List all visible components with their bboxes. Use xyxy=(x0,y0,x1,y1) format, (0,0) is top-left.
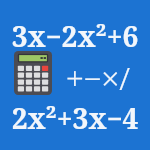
staticText: 3x−2x²+6 xyxy=(0,17,150,150)
button[interactable]: 3x−2x²+6 xyxy=(0,0,150,150)
staticText: +−×/ xyxy=(53,57,143,93)
staticText: 2x²+3x−4 xyxy=(0,99,150,150)
button[interactable]: Calculator xyxy=(14,51,52,95)
